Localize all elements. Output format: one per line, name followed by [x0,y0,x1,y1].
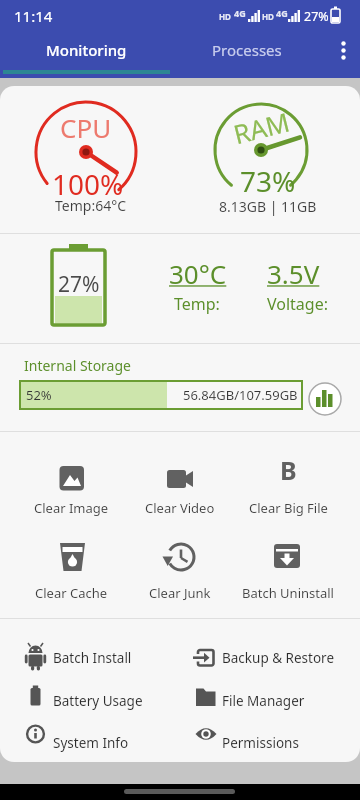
button[interactable] [126,445,234,525]
button[interactable] [14,638,174,678]
button[interactable] [126,530,234,610]
staticText: Internal Storage [24,356,131,375]
staticText: 73% [240,162,296,200]
staticText: 4G [234,7,246,19]
staticText: 11:14 [14,6,53,26]
staticText: B [280,453,297,487]
staticText: 4G [276,7,288,19]
staticText: Clear Image [34,499,109,517]
staticText: Batch Uninstall [242,584,334,602]
staticText: 27% [58,270,100,299]
staticText: File Manager [222,692,305,710]
staticText: 56.84GB/107.59GB [183,386,298,404]
button[interactable] [234,530,342,610]
staticText: 30°C [169,256,227,291]
staticText: Clear Big File [249,499,328,517]
staticText: Clear Junk [149,584,211,602]
button[interactable] [186,638,346,678]
staticText: HD [219,11,231,22]
button[interactable] [17,530,125,610]
staticText: Monitoring [46,40,127,60]
button[interactable] [186,681,346,721]
staticText: HD [262,11,274,22]
button[interactable] [14,681,174,721]
staticText: 27% [304,8,329,25]
staticText: CPU [60,110,112,145]
staticText: Backup & Restore [222,649,335,667]
staticText: 52% [26,386,52,404]
staticText: Permissions [222,734,299,752]
button[interactable]: Processes [174,28,320,72]
staticText: Temp:64°C [55,196,127,215]
button[interactable] [309,383,341,415]
button[interactable] [17,445,125,525]
staticText: 3.5V [267,256,320,291]
staticText: Processes [212,40,282,60]
button[interactable] [186,723,346,763]
button[interactable] [234,445,342,525]
staticText: Battery Usage [53,692,143,710]
button[interactable] [14,723,174,763]
staticText: RAM [230,103,293,151]
button[interactable]: Monitoring [0,28,172,72]
staticText: Batch Install [53,649,132,667]
staticText: Voltage: [267,293,328,315]
staticText: 8.13GB | 11GB [219,197,317,216]
staticText: Clear Video [145,499,215,517]
staticText: 100% [52,165,124,203]
staticText: System Info [53,734,129,752]
staticText: Temp: [174,293,220,315]
button[interactable] [330,36,356,66]
staticText: Clear Cache [35,584,108,602]
